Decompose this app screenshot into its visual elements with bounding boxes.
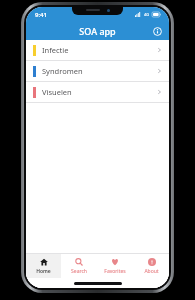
button[interactable]: About xyxy=(133,254,169,278)
button[interactable]: Visuelen xyxy=(26,82,169,102)
staticText: 4G xyxy=(144,12,150,17)
staticText: Visuelen xyxy=(42,87,157,97)
staticText: About xyxy=(144,268,159,275)
staticText: Search xyxy=(71,268,87,275)
button[interactable]: Info xyxy=(150,24,164,38)
staticText: SOA app xyxy=(79,25,116,37)
staticText: Home xyxy=(36,268,51,275)
button[interactable]: Infectie xyxy=(26,40,169,60)
button[interactable]: Syndromen xyxy=(26,61,169,81)
staticText: Infectie xyxy=(42,45,157,55)
staticText: 9:41 xyxy=(35,11,47,19)
staticText: Syndromen xyxy=(42,66,157,76)
button[interactable]: Favorites xyxy=(97,254,133,278)
staticText: Favorites xyxy=(104,268,126,275)
button[interactable]: Search xyxy=(61,254,97,278)
button[interactable]: Home xyxy=(26,254,61,278)
